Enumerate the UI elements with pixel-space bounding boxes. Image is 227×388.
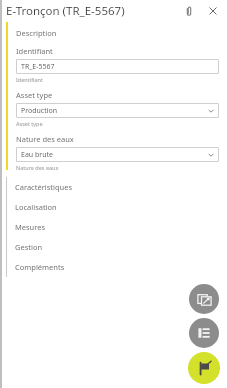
button[interactable]: Duplicate	[189, 284, 219, 314]
button[interactable]: Mesures	[0, 217, 227, 237]
staticText: Nature des eaux	[16, 164, 59, 171]
button[interactable]: Localisation	[0, 197, 227, 217]
staticText: Nature des eaux	[16, 134, 74, 144]
button[interactable]: Close	[203, 1, 223, 21]
staticText: Identifiant	[16, 76, 43, 83]
button[interactable]: Production	[16, 103, 219, 118]
staticText: Asset type	[16, 90, 53, 100]
staticText: Localisation	[15, 202, 57, 212]
staticText: E-Tronçon (TR_E-5567)	[6, 3, 179, 19]
button[interactable]: Eau brute	[16, 147, 219, 162]
staticText: Description	[16, 28, 57, 38]
button[interactable]: Edit	[188, 352, 220, 384]
button[interactable]: Attachments	[179, 1, 199, 21]
staticText: Identifiant	[16, 46, 53, 56]
staticText: Production	[21, 106, 58, 116]
button[interactable]: TR_E-5567	[16, 59, 219, 74]
staticText: Caractéristiques	[15, 182, 72, 192]
button[interactable]: Gestion	[0, 237, 227, 257]
staticText: Eau brute	[21, 150, 53, 160]
staticText: Asset type	[16, 120, 43, 127]
button[interactable]: Caractéristiques	[0, 177, 227, 197]
staticText: Mesures	[15, 222, 46, 232]
button[interactable]: Compléments	[0, 257, 227, 277]
staticText: Gestion	[15, 242, 43, 252]
button[interactable]: List	[189, 318, 219, 348]
staticText: Compléments	[15, 262, 65, 272]
staticText: TR_E-5567	[21, 62, 55, 72]
